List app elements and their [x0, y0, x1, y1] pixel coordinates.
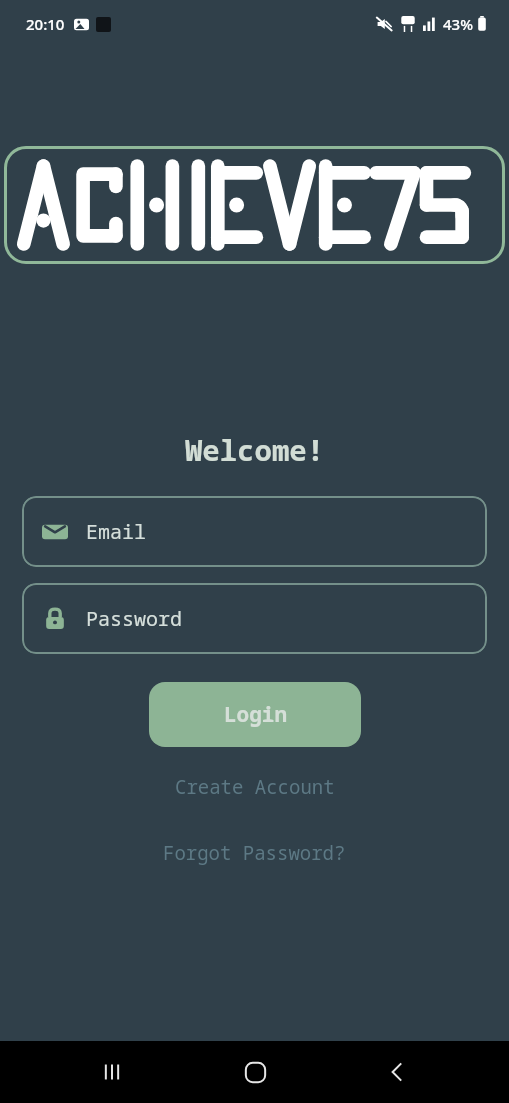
staticText: 20:10	[26, 14, 65, 34]
button[interactable]: Password	[22, 583, 487, 654]
staticText: Forgot Password?	[163, 840, 346, 866]
staticText: Create Account	[175, 774, 335, 800]
button[interactable]: Login	[149, 682, 361, 747]
button[interactable]: Back	[366, 1041, 428, 1103]
staticText: 43%	[443, 14, 473, 34]
staticText: Welcome!	[0, 430, 509, 469]
staticText: Email	[86, 518, 146, 545]
staticText: Login	[224, 700, 287, 729]
button[interactable]: Home	[224, 1041, 286, 1103]
staticText: Password	[86, 605, 182, 632]
button[interactable]: Email	[22, 496, 487, 567]
button[interactable]: Forgot Password?	[151, 836, 358, 870]
button[interactable]: Create Account	[163, 770, 347, 804]
button[interactable]: Recent apps	[81, 1041, 143, 1103]
